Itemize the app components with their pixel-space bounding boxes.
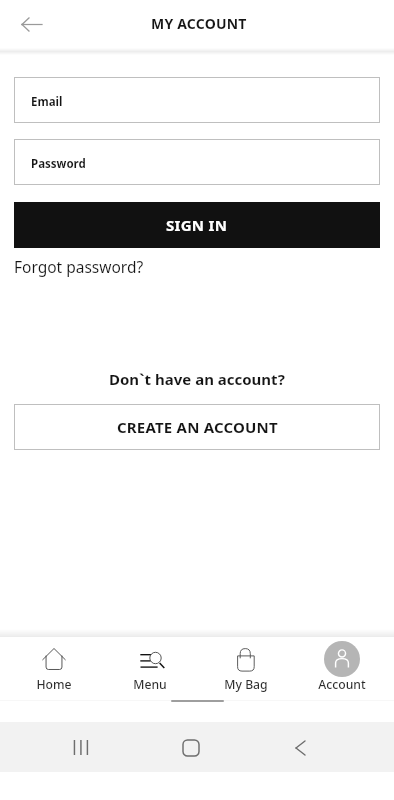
staticText: Forgot password? xyxy=(14,256,144,277)
button[interactable]: Menu xyxy=(102,637,198,701)
staticText: Menu xyxy=(133,676,167,693)
staticText: SIGN IN xyxy=(166,215,228,235)
button[interactable]: SIGN IN xyxy=(14,202,380,248)
staticText: Password xyxy=(31,156,86,172)
button[interactable]: Password xyxy=(14,139,380,185)
button[interactable]: Recents xyxy=(58,725,103,770)
button[interactable]: Back xyxy=(10,2,54,46)
button[interactable]: Back xyxy=(278,725,323,770)
button[interactable]: Account xyxy=(294,637,390,701)
staticText: Email xyxy=(31,94,63,110)
staticText: Account xyxy=(318,676,366,693)
button[interactable]: My Bag xyxy=(198,637,294,701)
button[interactable]: Home xyxy=(6,637,102,701)
staticText: Home xyxy=(36,676,72,693)
button[interactable]: Forgot password? xyxy=(14,256,144,277)
staticText: Don`t have an account? xyxy=(109,369,285,389)
button[interactable]: Home xyxy=(168,725,213,770)
button[interactable]: CREATE AN ACCOUNT xyxy=(14,404,380,450)
button[interactable]: Email xyxy=(14,77,380,123)
staticText: MY ACCOUNT xyxy=(151,14,247,33)
staticText: CREATE AN ACCOUNT xyxy=(117,417,278,437)
staticText: My Bag xyxy=(224,676,268,693)
